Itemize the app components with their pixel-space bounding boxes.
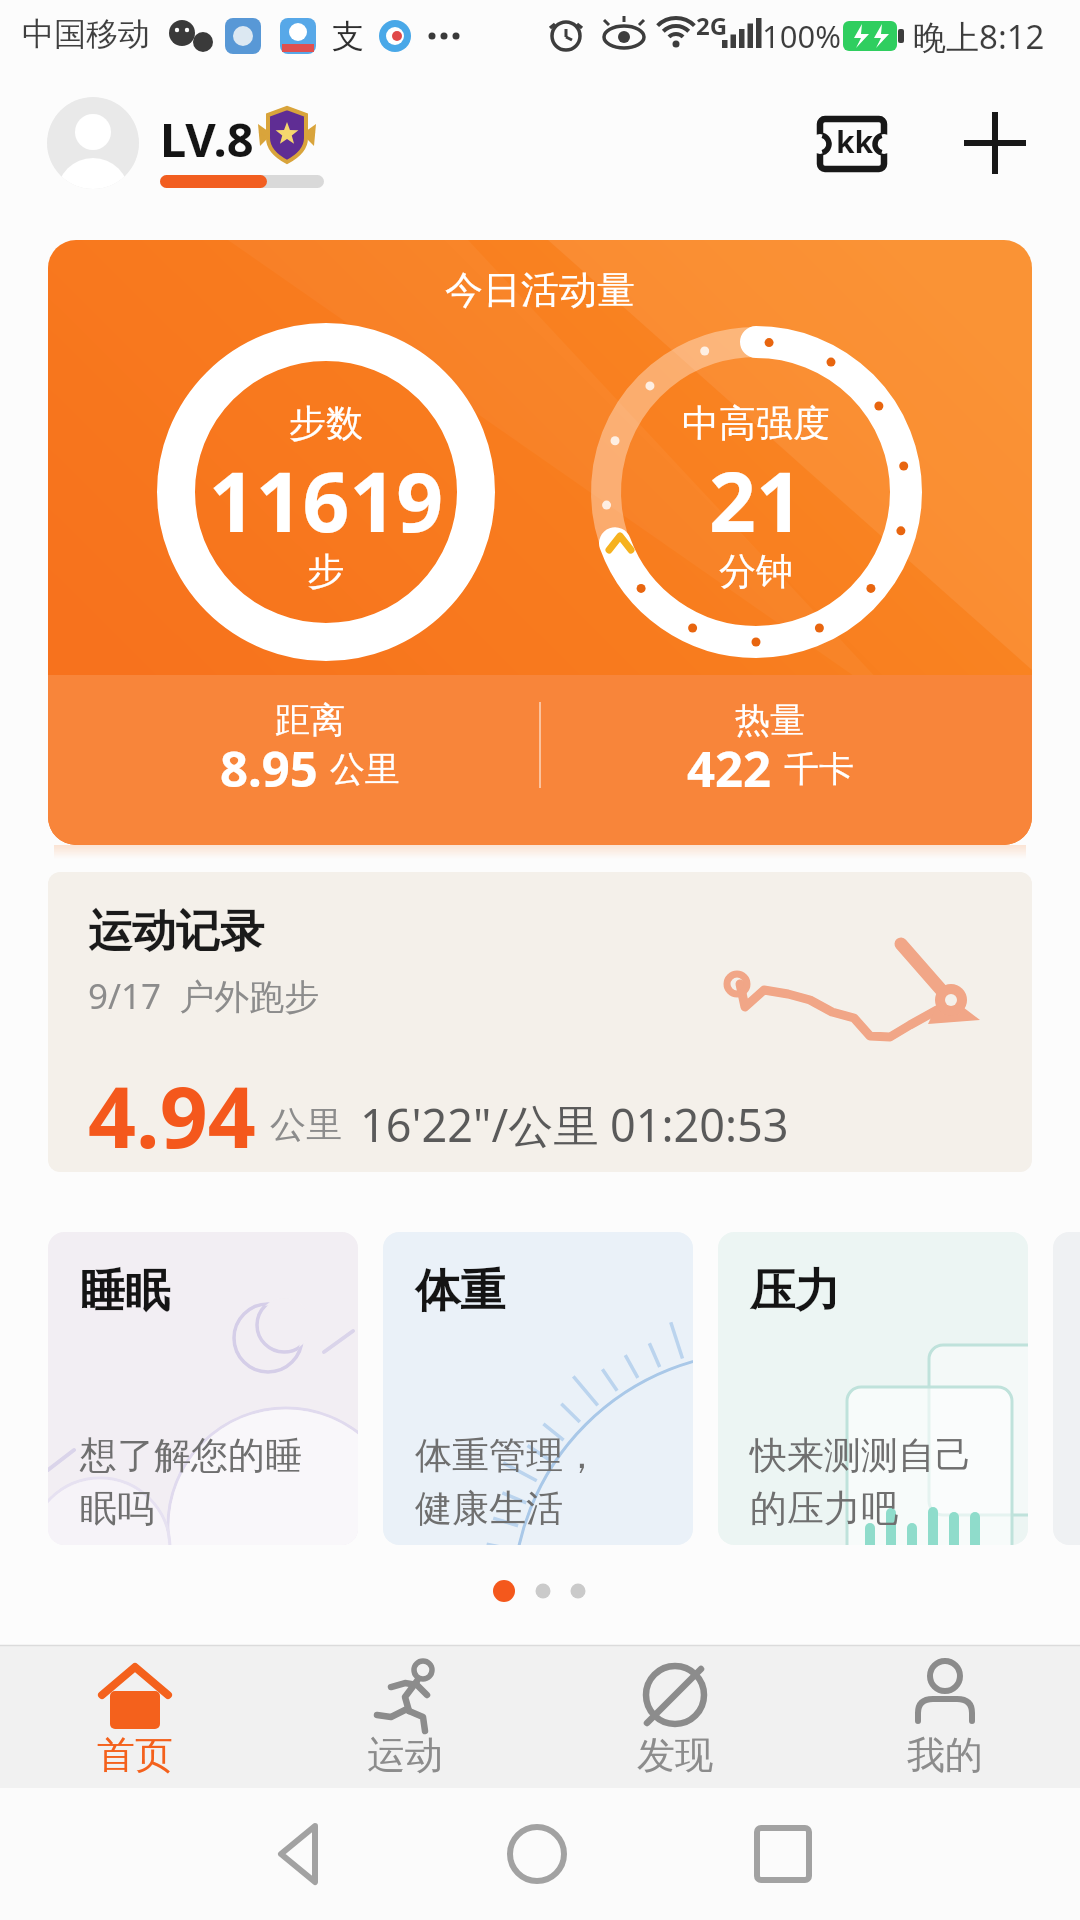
- staticText: 运动记录: [88, 904, 264, 959]
- staticText: 公里: [270, 1102, 342, 1147]
- staticText: 体重: [415, 1263, 505, 1320]
- staticText: 11619: [166, 444, 486, 556]
- button[interactable]: 发现: [575, 1645, 775, 1788]
- button[interactable]: 体重: [383, 1232, 693, 1545]
- button[interactable]: 睡眠: [48, 1232, 358, 1545]
- button[interactable]: kk: [810, 110, 894, 178]
- staticText: 21: [596, 444, 916, 556]
- staticText: 我的: [907, 1731, 983, 1779]
- staticText: 睡眠: [80, 1263, 170, 1320]
- staticText: 距离: [190, 698, 430, 742]
- staticText: 体重管理， 健康生活: [415, 1432, 661, 1532]
- button[interactable]: [487, 1804, 587, 1904]
- staticText: 9/17 户外跑步: [88, 972, 320, 1020]
- staticText: 发现: [637, 1731, 713, 1779]
- staticText: 晚上8:12: [913, 14, 1045, 59]
- button[interactable]: 我的: [845, 1645, 1045, 1788]
- staticText: 公里: [330, 747, 400, 791]
- button[interactable]: [247, 1804, 347, 1904]
- staticText: 16'22"/公里: [360, 1094, 599, 1155]
- staticText: 4.94: [88, 1058, 256, 1172]
- staticText: 步数: [206, 400, 446, 447]
- button[interactable]: [733, 1804, 833, 1904]
- staticText: 支: [332, 16, 364, 56]
- staticText: 首页: [97, 1731, 173, 1779]
- staticText: 422: [687, 735, 772, 802]
- staticText: 千卡: [784, 747, 854, 791]
- button[interactable]: 压力: [718, 1232, 1028, 1545]
- button[interactable]: [47, 97, 139, 189]
- staticText: kk: [836, 121, 874, 162]
- staticText: 分钟: [636, 548, 876, 595]
- button[interactable]: 首页: [35, 1645, 235, 1788]
- staticText: 步: [206, 548, 446, 595]
- staticText: 热量: [650, 698, 890, 742]
- staticText: 8.95: [220, 735, 318, 802]
- staticText: 100%: [762, 15, 841, 57]
- staticText: 运动: [367, 1731, 443, 1779]
- staticText: 想了解您的睡眠吗: [80, 1432, 326, 1532]
- staticText: 2G: [696, 9, 728, 42]
- staticText: LV.8: [160, 107, 254, 171]
- staticText: 今日活动量: [48, 266, 1032, 314]
- button[interactable]: [950, 98, 1040, 188]
- staticText: 中国移动: [22, 14, 150, 54]
- button[interactable]: 今日活动量: [48, 240, 1032, 845]
- staticText: 压力: [750, 1263, 840, 1320]
- staticText: 快来测测自己 的压力吧: [750, 1432, 996, 1532]
- button[interactable]: 运动记录: [48, 872, 1032, 1172]
- staticText: 01:20:53: [610, 1094, 789, 1155]
- button[interactable]: 运动: [305, 1645, 505, 1788]
- staticText: 中高强度: [636, 400, 876, 447]
